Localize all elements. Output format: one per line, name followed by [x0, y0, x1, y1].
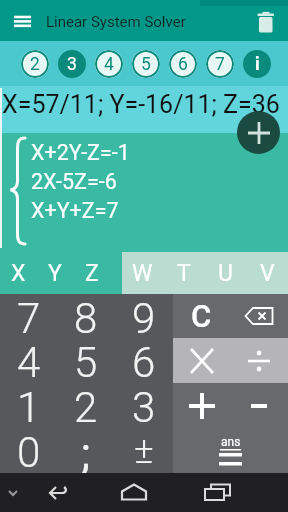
button[interactable]: 7: [0, 294, 57, 338]
button[interactable]: i: [243, 50, 271, 78]
button[interactable]: [173, 383, 230, 428]
button[interactable]: 6: [115, 338, 173, 383]
button[interactable]: [96, 473, 192, 512]
button[interactable]: [0, 473, 96, 512]
button[interactable]: 4: [95, 50, 123, 78]
staticText: W: [132, 260, 153, 287]
button[interactable]: U: [204, 252, 246, 294]
staticText: Linear System Solver: [46, 13, 186, 31]
staticText: 4: [104, 54, 114, 75]
button[interactable]: [230, 338, 288, 383]
staticText: T: [177, 260, 191, 287]
button[interactable]: ans: [173, 428, 288, 473]
staticText: 6: [132, 338, 156, 383]
staticText: 2: [30, 54, 40, 75]
staticText: 4: [17, 338, 41, 383]
button[interactable]: 6: [169, 50, 197, 78]
staticText: 3: [132, 383, 156, 428]
staticText: ;: [81, 428, 91, 473]
button[interactable]: C: [173, 294, 230, 338]
staticText: 7: [215, 54, 225, 75]
button[interactable]: 2: [21, 50, 49, 78]
staticText: ans: [221, 435, 241, 449]
button[interactable]: 0: [0, 428, 57, 473]
button[interactable]: T: [163, 252, 204, 294]
button[interactable]: [230, 294, 288, 338]
staticText: 8: [74, 294, 98, 338]
button[interactable]: 1: [0, 383, 57, 428]
button[interactable]: 3: [115, 383, 173, 428]
staticText: X=57/11; Y=-16/11; Z=36: [2, 90, 280, 119]
staticText: 1: [17, 383, 41, 428]
button[interactable]: Y: [36, 252, 73, 294]
staticText: i: [255, 54, 260, 75]
staticText: 5: [141, 54, 151, 75]
button[interactable]: 5: [132, 50, 160, 78]
staticText: 6: [178, 54, 188, 75]
staticText: X+2Y-Z=-1: [31, 140, 130, 165]
button[interactable]: [173, 338, 230, 383]
button[interactable]: 4: [0, 338, 57, 383]
button[interactable]: 8: [57, 294, 115, 338]
button[interactable]: 7: [206, 50, 234, 78]
button[interactable]: ;: [57, 428, 115, 473]
staticText: X: [11, 260, 26, 287]
button[interactable]: 9: [115, 294, 173, 338]
button[interactable]: X: [0, 252, 36, 294]
button[interactable]: X+Y+Z=7: [31, 196, 119, 225]
staticText: 2X-5Z=-6: [31, 169, 117, 194]
staticText: Z: [85, 260, 99, 287]
button[interactable]: X+2Y-Z=-1: [31, 138, 130, 167]
button[interactable]: ±: [115, 428, 173, 473]
button[interactable]: [192, 473, 288, 512]
staticText: 3: [67, 54, 77, 75]
staticText: Y: [48, 260, 62, 287]
staticText: V: [260, 260, 275, 287]
staticText: 7: [17, 294, 41, 338]
staticText: 9: [132, 294, 156, 338]
button[interactable]: Z: [73, 252, 110, 294]
button[interactable]: 3: [58, 50, 86, 78]
button[interactable]: 2X-5Z=-6: [31, 167, 117, 196]
staticText: X+Y+Z=7: [31, 198, 119, 223]
staticText: 0: [17, 428, 41, 473]
staticText: ±: [134, 429, 154, 472]
button[interactable]: 5: [57, 338, 115, 383]
button[interactable]: W: [122, 252, 163, 294]
staticText: U: [218, 260, 233, 287]
button[interactable]: V: [246, 252, 288, 294]
button[interactable]: 2: [57, 383, 115, 428]
button[interactable]: [237, 111, 280, 154]
button[interactable]: [8, 6, 38, 36]
staticText: 2: [74, 383, 98, 428]
button[interactable]: [230, 383, 288, 428]
button[interactable]: [252, 7, 280, 35]
staticText: 5: [74, 338, 98, 383]
staticText: C: [191, 298, 212, 334]
